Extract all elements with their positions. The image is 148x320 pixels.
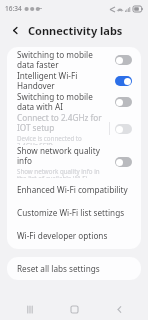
button[interactable]: Enhanced Wi-Fi compatibility xyxy=(7,178,141,201)
button[interactable]: Back xyxy=(104,298,134,320)
staticText: Connectivity labs xyxy=(28,23,123,38)
staticText: Wi-Fi developer options xyxy=(17,230,108,241)
staticText: Customize Wi-Fi list settings xyxy=(17,207,125,218)
staticText: 16:34 xyxy=(5,4,22,13)
button[interactable]: Customize Wi-Fi list settings xyxy=(7,201,141,224)
button[interactable]: Off xyxy=(115,157,132,167)
staticText: Show network quality info in the list of… xyxy=(17,167,109,178)
button[interactable]: Show network quality info xyxy=(7,145,141,178)
staticText: Intelligent Wi-Fi Handover xyxy=(17,70,109,91)
button[interactable]: Off xyxy=(115,124,132,134)
button[interactable]: Connect to 2.4GHz for IOT setup xyxy=(7,112,141,145)
button[interactable]: Intelligent Wi-Fi Handover xyxy=(7,70,141,91)
button[interactable]: Home xyxy=(59,298,89,320)
button[interactable]: Reset all labs settings xyxy=(7,257,141,280)
button[interactable]: Off xyxy=(115,97,132,107)
staticText: Connect to 2.4GHz for IOT setup xyxy=(17,112,103,133)
button[interactable]: Recents xyxy=(15,298,45,320)
staticText: Device is connected to 2.4GHz SSID xyxy=(17,134,103,145)
button[interactable]: Switching to mobile data faster xyxy=(7,49,141,70)
button[interactable]: On xyxy=(115,76,132,86)
staticText: Switching to mobile data faster xyxy=(17,49,109,70)
button[interactable]: Off xyxy=(115,55,132,65)
button[interactable]: Back xyxy=(7,22,23,38)
staticText: Show network quality info xyxy=(17,145,109,166)
staticText: Enhanced Wi-Fi compatibility xyxy=(17,184,128,195)
staticText: Reset all labs settings xyxy=(17,263,100,274)
button[interactable]: Switching to mobile data with AI xyxy=(7,91,141,112)
staticText: Switching to mobile data with AI xyxy=(17,91,109,112)
button[interactable]: Wi-Fi developer options xyxy=(7,224,141,247)
